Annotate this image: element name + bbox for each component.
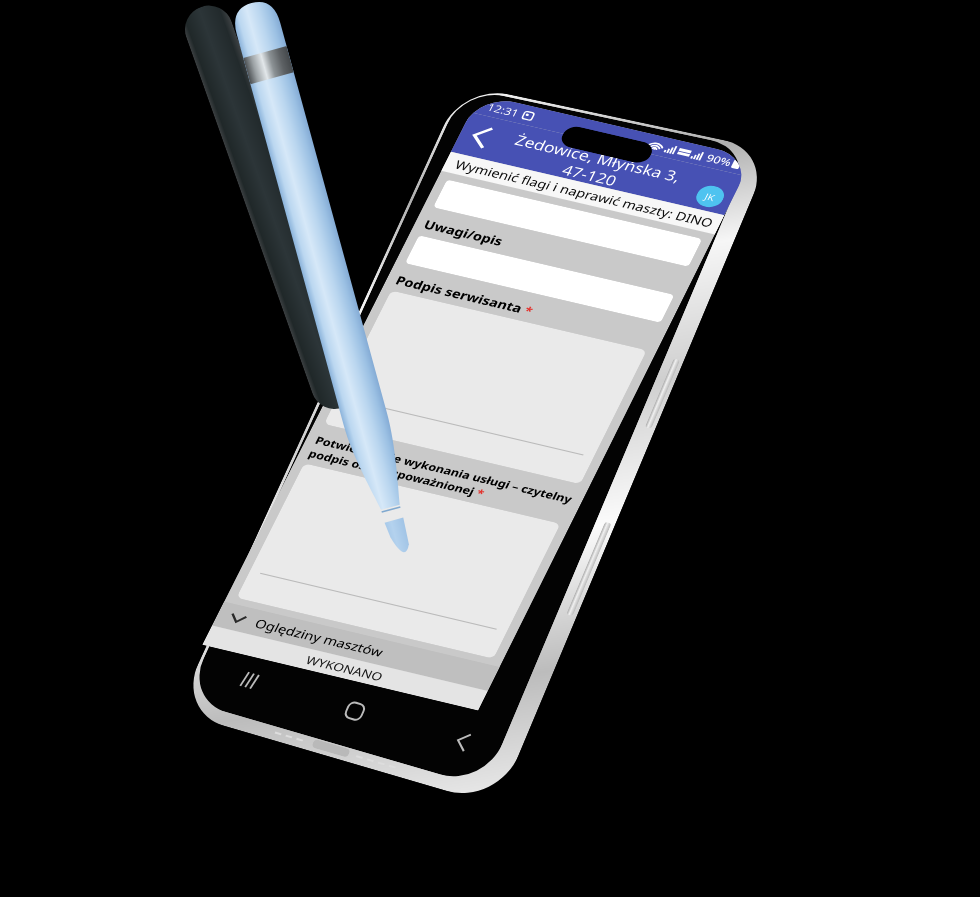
staticText: JK <box>703 190 717 203</box>
staticText: Uwagi/opis <box>421 216 507 249</box>
staticText: 12:31 <box>485 100 522 120</box>
button[interactable]: Home <box>291 672 419 750</box>
staticText: 90% <box>704 151 734 169</box>
staticText: Podpis serwisanta <box>393 272 529 317</box>
staticText: * <box>522 303 536 318</box>
button[interactable]: WYKONANO <box>202 625 488 710</box>
staticText: podpis osoby upoważnionej <box>306 446 480 499</box>
button[interactable]: Oględziny masztów <box>212 602 500 691</box>
staticText: * <box>474 486 488 501</box>
button[interactable]: Back <box>398 702 528 781</box>
staticText: Potwierdzenie wykonania usługi – czyteln… <box>313 433 575 506</box>
staticText: WYKONANO <box>303 652 386 684</box>
button[interactable]: Navigate back <box>453 117 507 156</box>
staticText: Oględziny masztów <box>252 615 386 660</box>
staticText: Żedowice, Młyńska 3, 47-120 <box>489 127 699 206</box>
staticText: Wymienić flagi i naprawić maszty: DINO <box>452 156 717 231</box>
button[interactable]: User account <box>681 175 740 218</box>
button[interactable]: Recent apps <box>187 642 312 719</box>
